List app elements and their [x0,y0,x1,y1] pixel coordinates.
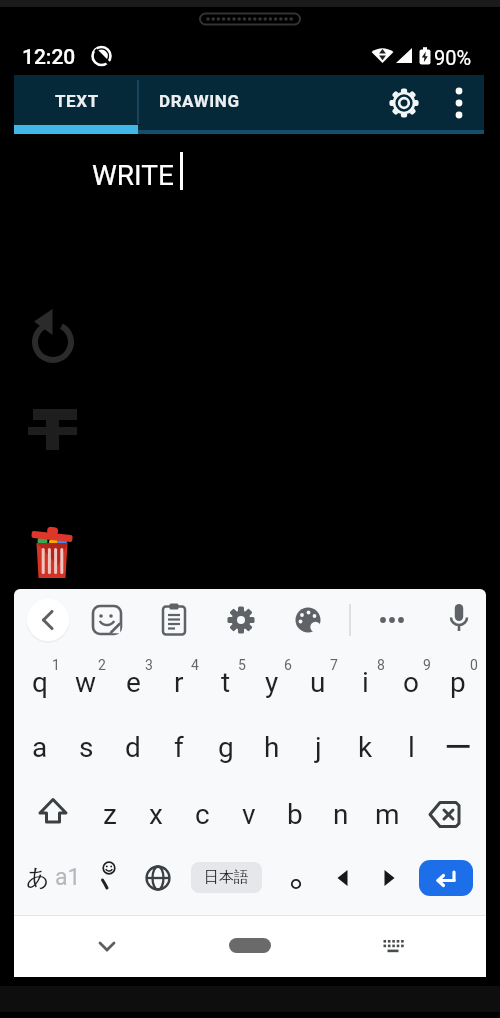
staticText: p [450,666,466,699]
staticText: v [242,798,256,831]
button[interactable] [90,855,126,899]
button[interactable]: n [318,792,364,836]
staticText: 8 [377,657,385,673]
staticText: 1 [52,657,60,673]
staticText: 12:20 [22,45,76,70]
button[interactable] [28,520,78,582]
button[interactable]: a [17,725,63,769]
button[interactable] [30,794,76,834]
staticText: k [358,731,373,764]
staticText: 3 [145,657,153,673]
button[interactable] [24,402,82,456]
staticText: i [362,666,369,699]
staticText: ー [444,730,472,765]
staticText: 9 [423,657,431,673]
button[interactable] [28,312,80,370]
staticText: u [310,666,326,699]
button[interactable]: h [249,725,295,769]
button[interactable]: q [17,660,63,704]
staticText: a1 [55,864,81,891]
staticText: j [315,731,322,764]
button[interactable] [376,864,402,892]
button[interactable]: j [295,725,341,769]
staticText: 7 [330,657,338,673]
staticText: n [333,798,349,831]
button[interactable]: 日本語 [191,862,262,893]
button[interactable] [424,797,470,833]
staticText: あ [26,863,50,892]
staticText: z [103,798,117,831]
button[interactable]: v [226,792,272,836]
button[interactable]: s [63,725,109,769]
staticText: f [174,731,184,764]
staticText: b [287,798,303,831]
button[interactable] [388,87,420,119]
button[interactable] [444,84,474,124]
staticText: x [149,798,163,831]
button[interactable]: f [156,725,202,769]
staticText: m [375,798,400,831]
button[interactable] [138,75,262,131]
button[interactable]: y [249,660,295,704]
button[interactable]: k [342,725,388,769]
staticText: s [79,731,94,764]
staticText: q [32,666,48,699]
button[interactable]: z [87,792,133,836]
staticText: 日本語 [204,868,249,887]
button[interactable] [376,610,408,630]
staticText: 90% [434,46,472,69]
button[interactable] [142,862,174,894]
staticText: 4 [191,657,199,673]
staticText: 2 [98,657,106,673]
button[interactable] [378,934,408,960]
button[interactable]: g [203,725,249,769]
button[interactable]: b [272,792,318,836]
button[interactable] [90,603,124,637]
staticText: t [221,666,231,699]
staticText: o [403,666,419,699]
button[interactable] [444,600,474,640]
button[interactable]: x [133,792,179,836]
button[interactable]: r [156,660,202,704]
button[interactable] [282,862,310,894]
button[interactable]: l [388,725,434,769]
button[interactable] [14,75,138,131]
button[interactable]: t [203,660,249,704]
staticText: 6 [284,657,292,673]
button[interactable] [17,855,87,899]
staticText: a [32,731,48,764]
button[interactable]: w [63,660,109,704]
button[interactable]: m [364,792,410,836]
staticText: d [125,731,141,764]
staticText: h [264,731,280,764]
button[interactable] [419,860,473,896]
staticText: r [174,666,184,699]
staticText: w [75,666,97,699]
button[interactable] [158,602,190,638]
staticText: DRAWING [159,91,240,111]
staticText: TEXT [55,91,99,111]
button[interactable] [330,864,356,892]
button[interactable]: o [388,660,434,704]
staticText: e [126,666,141,699]
button[interactable]: u [295,660,341,704]
button[interactable]: e [110,660,156,704]
staticText: y [265,666,279,699]
button[interactable] [225,604,257,636]
button[interactable] [92,932,122,960]
button[interactable]: p [435,660,481,704]
staticText: 0 [470,657,478,673]
staticText: g [218,731,234,764]
button[interactable] [229,938,271,953]
button[interactable]: i [342,660,388,704]
button[interactable]: c [179,792,225,836]
button[interactable] [292,604,324,636]
staticText: 5 [238,657,246,673]
button[interactable]: d [110,725,156,769]
staticText: WRITE [92,159,174,192]
button[interactable] [26,598,70,642]
staticText: l [408,731,415,764]
staticText: c [195,798,210,831]
button[interactable]: ー [435,725,481,769]
